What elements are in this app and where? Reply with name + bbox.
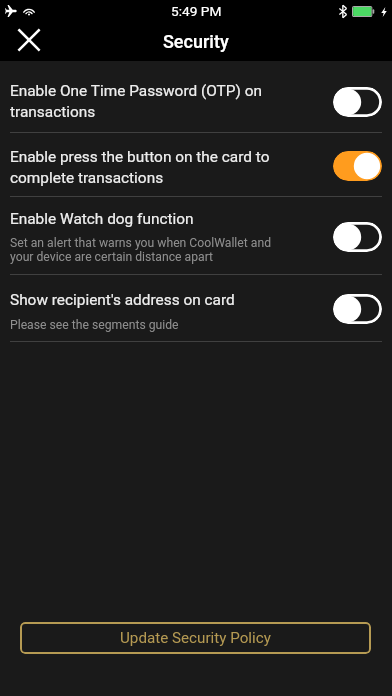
button[interactable]: Toggle off [333,294,382,324]
staticText: Enable One Time Password (OTP) on transa… [10,79,262,121]
button[interactable]: Enable Watch dog function [0,197,392,274]
staticText: Set an alert that warns you when CoolWal… [10,236,272,264]
button[interactable]: Close [0,22,58,61]
staticText: Please see the segments guide [10,318,179,332]
staticText: Security [163,31,229,52]
staticText: 5:49 PM [171,3,222,19]
button[interactable]: Show recipient's address on card [0,275,392,341]
button[interactable]: Enable One Time Password (OTP) on transa… [0,61,392,132]
button[interactable]: Enable press the button on the card to c… [0,133,392,196]
button[interactable]: Toggle on [333,151,382,181]
button[interactable]: Update Security Policy [20,622,371,654]
staticText: Enable Watch dog function [10,207,194,228]
staticText: Enable press the button on the card to c… [10,145,270,187]
button[interactable]: Toggle off [333,222,382,252]
staticText: Show recipient's address on card [10,288,235,309]
button[interactable]: Toggle off [333,87,382,117]
staticText: Update Security Policy [120,629,271,647]
